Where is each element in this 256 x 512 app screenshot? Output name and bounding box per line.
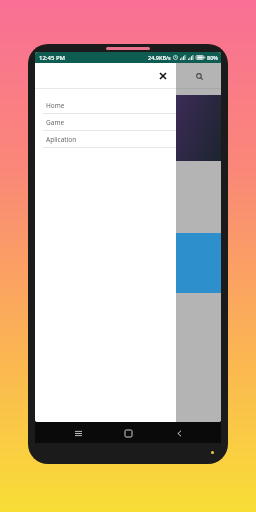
button[interactable]: Search	[196, 73, 203, 80]
button[interactable]: Aplication	[35, 131, 176, 148]
staticText: 12:45 PM	[39, 54, 66, 62]
staticText: Home	[46, 101, 65, 110]
button[interactable]: Recent apps	[70, 425, 86, 441]
button[interactable]: Back	[171, 425, 187, 441]
staticText: 24.9KB/s	[148, 54, 171, 61]
staticText: 80%	[207, 54, 218, 61]
staticText: Game	[46, 118, 65, 127]
button[interactable]: Home	[35, 97, 176, 114]
button[interactable]: Close drawer	[157, 70, 169, 82]
button[interactable]: Game	[35, 114, 176, 131]
button[interactable]: Home	[120, 425, 136, 441]
staticText: Aplication	[46, 135, 77, 144]
